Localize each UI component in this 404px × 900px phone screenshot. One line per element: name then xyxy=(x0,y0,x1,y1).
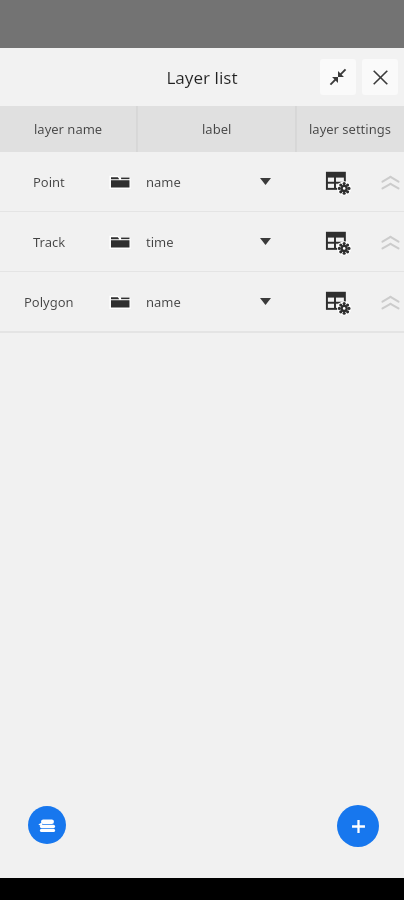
button[interactable]: Layers xyxy=(28,806,66,844)
button[interactable]: Choose folder xyxy=(100,212,140,271)
staticText: layer name xyxy=(34,120,103,138)
button[interactable]: layer name xyxy=(0,106,137,152)
button[interactable]: Layer settings xyxy=(316,152,358,211)
staticText: Track xyxy=(33,233,66,251)
button[interactable]: Collapse layer xyxy=(376,272,404,331)
staticText: Polygon xyxy=(24,293,74,311)
button[interactable]: Collapse layer xyxy=(376,152,404,211)
button[interactable]: Select label field xyxy=(246,272,284,331)
staticText: Point xyxy=(33,173,65,191)
button[interactable]: Polygon xyxy=(0,272,404,331)
button[interactable]: Layer settings xyxy=(316,212,358,271)
button[interactable]: Select label field xyxy=(246,212,284,271)
button[interactable]: Close xyxy=(362,59,398,95)
button[interactable]: Choose folder xyxy=(100,152,140,211)
staticText: time xyxy=(146,233,174,251)
button[interactable]: Add layer xyxy=(337,805,379,847)
button[interactable]: Layer settings xyxy=(316,272,358,331)
button[interactable]: Select label field xyxy=(246,152,284,211)
staticText: label xyxy=(202,120,232,138)
staticText: name xyxy=(146,293,181,311)
button[interactable]: Choose folder xyxy=(100,272,140,331)
staticText: name xyxy=(146,173,181,191)
button[interactable]: Collapse layer xyxy=(376,212,404,271)
staticText: layer settings xyxy=(309,120,391,138)
button[interactable]: Collapse xyxy=(320,59,356,95)
button[interactable]: label xyxy=(137,106,296,152)
button[interactable]: Track xyxy=(0,212,404,271)
button[interactable]: Point xyxy=(0,152,404,211)
staticText: Layer list xyxy=(166,66,238,89)
button[interactable]: layer settings xyxy=(296,106,404,152)
